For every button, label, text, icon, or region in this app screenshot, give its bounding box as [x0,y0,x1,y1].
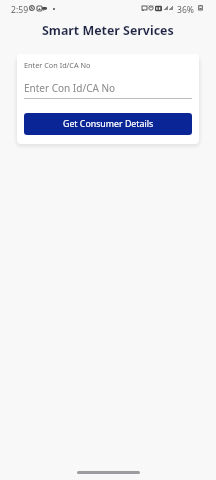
staticText: 2:59 [11,4,29,16]
staticText: Enter Con Id/CA No [24,60,91,70]
staticText: 36% [177,4,194,16]
staticText: Get Consumer Details [63,118,154,130]
staticText: Smart Meter Services [42,22,174,37]
button[interactable]: Get Consumer Details [24,113,192,135]
staticText: Enter Con Id/CA No [24,81,116,95]
button[interactable]: Enter Con Id/CA No [24,75,192,99]
other: Battery [198,5,203,10]
